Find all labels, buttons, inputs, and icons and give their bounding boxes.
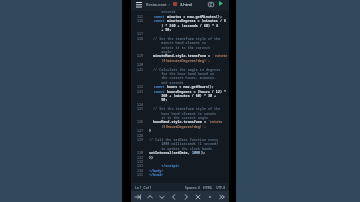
staticText: </html> [149, 172, 164, 177]
staticText: 129 [137, 137, 144, 142]
staticText: // Set the transform style of the [149, 106, 221, 111]
staticText: angle [149, 49, 172, 54]
staticText: seconds [149, 9, 176, 14]
staticText: it to the correct angle [149, 115, 208, 120]
staticText: 134 [137, 168, 144, 173]
staticText: // Calculate the angle in degrees [149, 67, 221, 72]
staticText: hour hand element to rotate [149, 111, 217, 116]
staticText: </body> [149, 168, 164, 173]
staticText: 123 [137, 89, 144, 94]
staticText: rotate it to the correct [149, 45, 211, 50]
staticText: // Call the setDate function every [149, 137, 219, 142]
staticText: 117 [137, 31, 144, 36]
staticText: the current hours, minutes, [149, 75, 217, 80]
button[interactable]: down [157, 192, 167, 202]
staticText: + 90; [149, 27, 172, 32]
staticText: minutesDegrees = (minutes / 6 [167, 18, 226, 23]
button[interactable]: up [145, 192, 155, 202]
staticText: 116 [137, 18, 144, 23]
staticText: hoursDegrees = (hours / 12) * [167, 89, 226, 94]
staticText: const [154, 18, 167, 23]
staticText: 3.html [180, 2, 193, 7]
staticText: (${minutesDegrees}deg)`; [149, 58, 211, 63]
staticText: 118 [137, 36, 144, 41]
staticText: minute hand element to [149, 40, 206, 45]
button[interactable]: left [169, 192, 179, 202]
staticText: 124 [137, 102, 144, 107]
staticText: 130 [137, 150, 144, 155]
staticText: setInterval(setDate, [149, 150, 192, 155]
staticText: and seconds [149, 80, 184, 85]
button[interactable]: right [181, 192, 191, 202]
staticText: 125 [137, 106, 144, 111]
button[interactable]: Run [215, 0, 227, 11]
staticText: Ln 1, Col 1 [135, 185, 152, 190]
staticText: 128 [137, 133, 144, 138]
button[interactable]: tab [133, 192, 143, 202]
staticText: 120 [137, 62, 144, 67]
staticText: 131 [137, 155, 144, 160]
staticText: 133 [137, 163, 144, 168]
staticText: const [154, 14, 167, 19]
staticText: // Set the transform style of the [149, 36, 221, 41]
staticText: 135 [137, 172, 144, 177]
staticText: HTML [203, 185, 213, 190]
staticText: `rotate [208, 119, 223, 124]
staticText: minuteHand.style.transform = [149, 53, 213, 58]
staticText: 115 [137, 14, 144, 19]
staticText: for the hour hand based on [149, 71, 215, 76]
staticText: Spaces: 4 [185, 185, 200, 190]
staticText: hourHand.style.transform = [149, 119, 208, 124]
staticText: 90; [149, 97, 168, 102]
staticText: } [149, 128, 152, 133]
button[interactable]: Preview [204, 0, 216, 11]
button[interactable]: more [217, 192, 227, 202]
staticText: ); [201, 150, 206, 155]
staticText: const [154, 84, 167, 89]
staticText: ) * 360 + (seconds / 60) * 6 [149, 23, 219, 28]
staticText: </script> [149, 163, 180, 168]
staticText: > [168, 2, 171, 7]
staticText: 121 [137, 67, 144, 72]
staticText: }) [149, 155, 154, 160]
staticText: 132 [137, 159, 144, 164]
staticText: 119 [137, 53, 144, 58]
button[interactable]: dot [205, 192, 215, 202]
button[interactable]: close [193, 192, 203, 202]
staticText: hours = now.getHours(); [167, 84, 214, 89]
staticText: Restaurant [146, 2, 167, 7]
staticText: minutes = now.getMinutes(); [167, 14, 222, 19]
staticText: (${hoursDegrees}deg)`; [149, 124, 206, 129]
staticText: 1000 milliseconds (1 second) [149, 141, 219, 146]
staticText: 122 [137, 84, 144, 89]
staticText: `rotate [213, 53, 228, 58]
staticText: UTF-8 [216, 185, 226, 190]
staticText: 127 [137, 128, 144, 133]
staticText: to update the clock hands [149, 146, 213, 151]
staticText: const [154, 89, 167, 94]
staticText: 360 + (minutes / 60) * 30 + [149, 93, 217, 98]
staticText: 1000 [192, 150, 201, 155]
button[interactable]: Menu [133, 0, 145, 11]
staticText: 126 [137, 119, 144, 124]
